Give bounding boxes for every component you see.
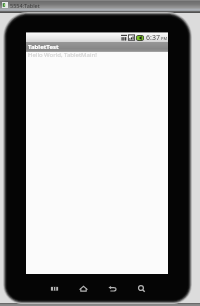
button[interactable]: Back [98,280,127,296]
staticText: Hello World, TabletMain! [28,51,97,59]
staticText: 6:37 [146,33,160,42]
button[interactable]: Search [127,280,156,296]
button[interactable]: Home [69,280,98,296]
staticText: PM [161,36,168,41]
staticText: 5554:Tablet [10,2,40,8]
button[interactable]: Recent apps [40,280,69,296]
staticText: TabletTest [28,43,59,51]
